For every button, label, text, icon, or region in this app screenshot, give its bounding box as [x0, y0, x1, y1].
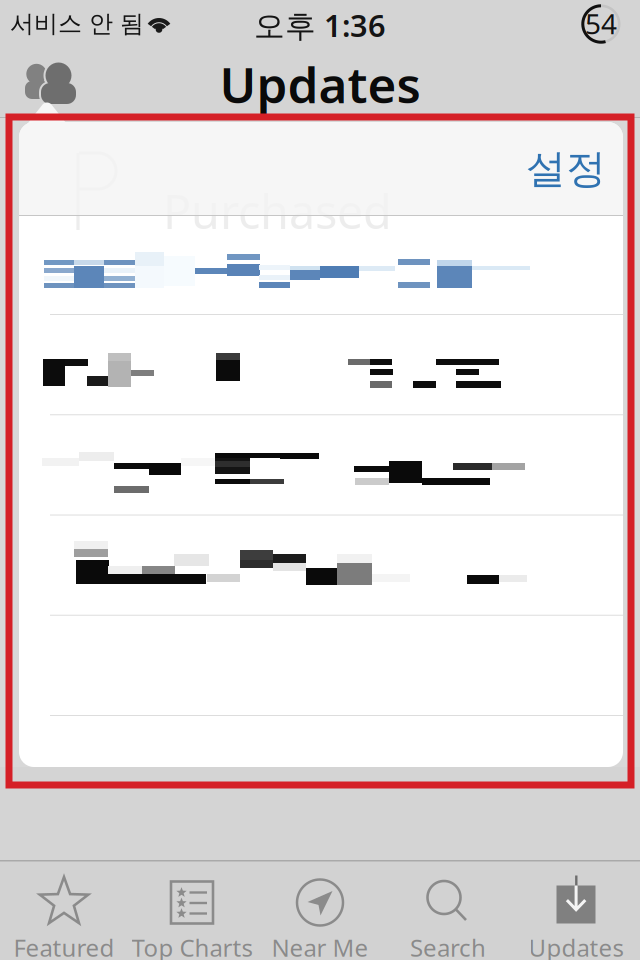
staticText: Near Me [271, 932, 368, 960]
button[interactable]: Search [384, 861, 512, 960]
staticText: Search [410, 932, 486, 960]
staticText: Top Charts [131, 932, 252, 960]
button[interactable]: Featured [0, 861, 128, 960]
staticText: 54 [585, 5, 617, 42]
staticText: Updates [528, 932, 623, 960]
button[interactable]: Updates [512, 861, 640, 960]
staticText: Purchased [163, 180, 392, 242]
staticText: 오후 1:36 [254, 5, 386, 45]
button[interactable]: Account [22, 58, 82, 108]
staticText: 설정 [526, 144, 606, 193]
button[interactable]: Near Me [256, 861, 384, 960]
button[interactable]: Top Charts [128, 861, 256, 960]
staticText: 서비스 안 됨 [10, 9, 144, 38]
staticText: Featured [13, 932, 114, 960]
button[interactable]: 설정 [423, 136, 606, 202]
staticText: Updates [219, 51, 420, 117]
